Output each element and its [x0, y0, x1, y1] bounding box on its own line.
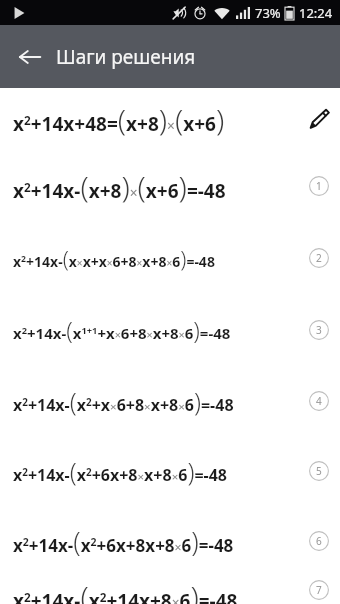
button[interactable]: x2+14x-(x1+1+x×6+8×x+8×6)=-48: [0, 294, 340, 366]
button[interactable]: Step 3: [309, 320, 329, 340]
staticText: x2+14x-(x2+x×6+8×x+8×6)=-48: [13, 384, 234, 418]
button[interactable]: Step 4: [309, 391, 329, 411]
button[interactable]: Step 6: [309, 531, 329, 551]
staticText: x2+14x-(x1+1+x×6+8×x+8×6)=-48: [13, 314, 231, 346]
staticText: 3: [316, 323, 322, 337]
staticText: 1: [316, 179, 322, 193]
staticText: x2+14x+48=(x+8)×(x+6): [13, 99, 225, 140]
button[interactable]: Step 2: [309, 248, 329, 268]
button[interactable]: x2+14x-(x2+14x+8×6)=-48: [0, 576, 340, 604]
button[interactable]: x2+14x-(x2+6x+8×x+8×6)=-48: [0, 436, 340, 506]
staticText: x2+14x-(x2+14x+8×6)=-48: [13, 576, 238, 604]
button[interactable]: x2+14x+48=(x+8)×(x+6): [0, 88, 340, 150]
staticText: x2+14x-(x+8)×(x+6)=-48: [13, 166, 226, 207]
staticText: x2+14x-(x2+6x+8×x+8×6)=-48: [13, 454, 227, 488]
staticText: 5: [316, 464, 322, 478]
staticText: 12:24: [299, 4, 333, 22]
staticText: 6: [316, 534, 322, 548]
button[interactable]: x2+14x-(x×x+x×6+8×x+8×6)=-48: [0, 222, 340, 294]
staticText: 7: [316, 583, 322, 597]
button[interactable]: x2+14x-(x2+x×6+8×x+8×6)=-48: [0, 366, 340, 436]
button[interactable]: x2+14x-(x+8)×(x+6)=-48: [0, 150, 340, 222]
staticText: Шаги решения: [56, 44, 196, 70]
staticText: 73%: [255, 4, 281, 22]
button[interactable]: Step 5: [309, 461, 329, 481]
button[interactable]: x2+14x-(x2+6x+8x+8×6)=-48: [0, 506, 340, 576]
staticText: 2: [316, 251, 322, 265]
staticText: x2+14x-(x2+6x+8x+8×6)=-48: [13, 523, 234, 560]
button[interactable]: Back: [10, 37, 50, 77]
button[interactable]: Step 7: [309, 580, 329, 600]
button[interactable]: Step 1: [309, 176, 329, 196]
staticText: 4: [316, 394, 322, 408]
staticText: x2+14x-(x×x+x×6+8×x+8×6)=-48: [13, 243, 215, 273]
button[interactable]: Edit equation: [302, 102, 336, 136]
